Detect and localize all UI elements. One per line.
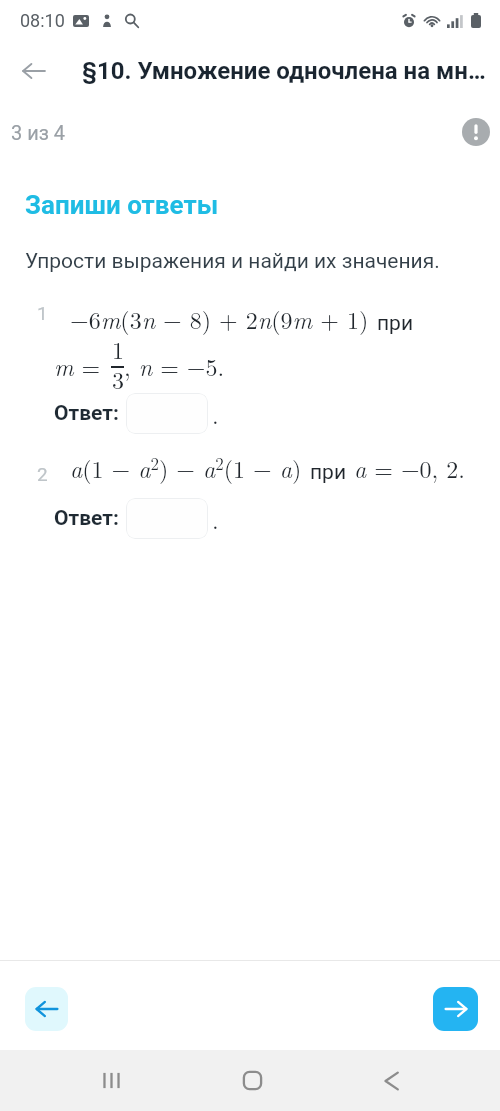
staticText: Упрости выражения и найди их значения. xyxy=(25,249,440,274)
button[interactable]: Previous xyxy=(25,987,68,1031)
button[interactable]: Answer field xyxy=(126,393,208,434)
button[interactable]: Back xyxy=(351,1050,431,1111)
button[interactable]: Answer field xyxy=(126,498,208,539)
staticText: Запиши ответы xyxy=(25,190,219,220)
staticText: 3 из 4 xyxy=(11,121,66,144)
button[interactable]: Next xyxy=(433,987,478,1031)
staticText: §10. Умножение одночлена на мн… xyxy=(82,57,486,85)
staticText: при xyxy=(310,460,347,485)
staticText: 1 xyxy=(112,332,124,366)
button[interactable]: Recent apps xyxy=(71,1050,151,1111)
staticText: , n = −5. xyxy=(124,349,225,383)
button[interactable]: Back xyxy=(10,47,58,95)
staticText: Ответ: xyxy=(54,506,119,531)
staticText: a(1 − a2) − a2(1 − a) xyxy=(70,451,302,485)
staticText: 08:10 xyxy=(20,10,65,31)
button[interactable]: Info xyxy=(456,112,496,152)
staticText: . xyxy=(212,502,219,536)
staticText: . xyxy=(212,397,219,431)
staticText: m = xyxy=(54,349,109,383)
staticText: 3 xyxy=(112,362,124,396)
staticText: −6m(3n − 8) + 2n(9m + 1) xyxy=(70,302,369,336)
staticText: Ответ: xyxy=(54,401,119,426)
staticText: при xyxy=(377,311,414,336)
staticText: a = −0, 2. xyxy=(354,451,465,485)
staticText: 2 xyxy=(37,463,48,485)
button[interactable]: Home xyxy=(212,1050,292,1111)
staticText: 1 xyxy=(37,302,48,324)
